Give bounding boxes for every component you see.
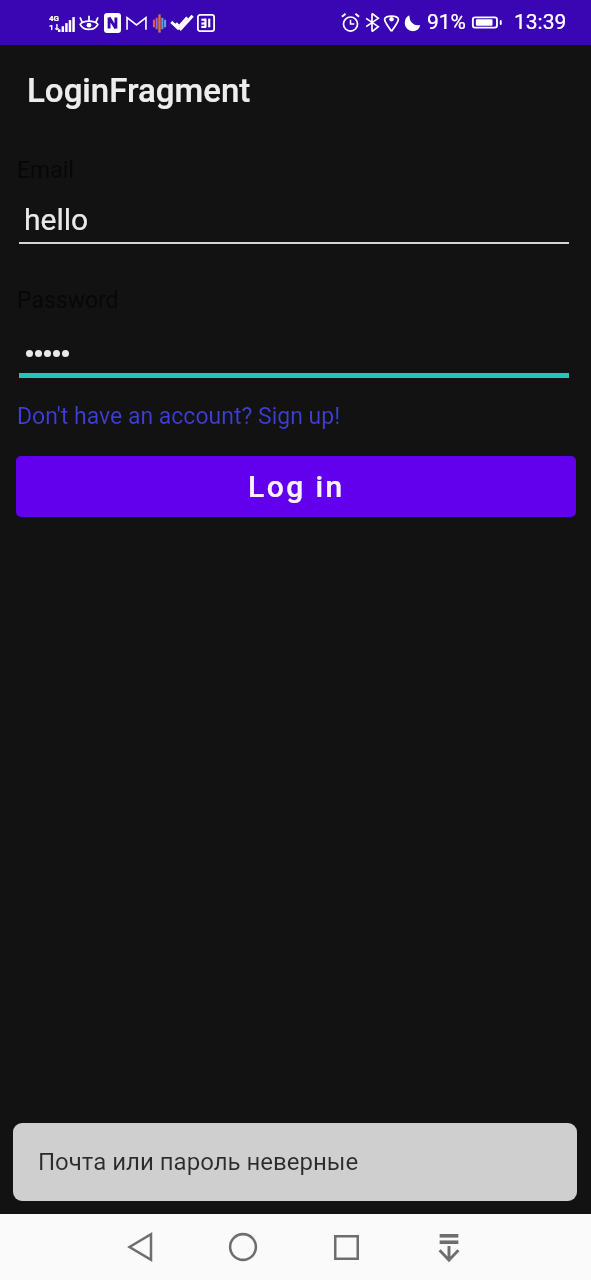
staticText: 91% [427,10,466,35]
button[interactable]: Home [213,1217,273,1277]
button[interactable]: Recents [316,1217,376,1277]
button[interactable]: Don't have an account? Sign up! [0,0,324,27]
staticText: hello [24,202,89,237]
staticText: Log in [248,469,345,504]
staticText: Email [17,157,74,184]
staticText: 13:39 [514,10,567,35]
button[interactable]: Hide keyboard [419,1217,479,1277]
staticText: Password [17,287,119,314]
button[interactable]: Password field [17,280,569,378]
button[interactable]: Log in [16,456,576,517]
staticText: 4G [49,14,60,23]
button[interactable]: Email field [17,150,569,246]
staticText: Почта или пароль неверные [38,1148,359,1176]
staticText: 1↓ [49,23,61,32]
button[interactable]: Back [110,1217,170,1277]
staticText: LoginFragment [27,71,251,110]
